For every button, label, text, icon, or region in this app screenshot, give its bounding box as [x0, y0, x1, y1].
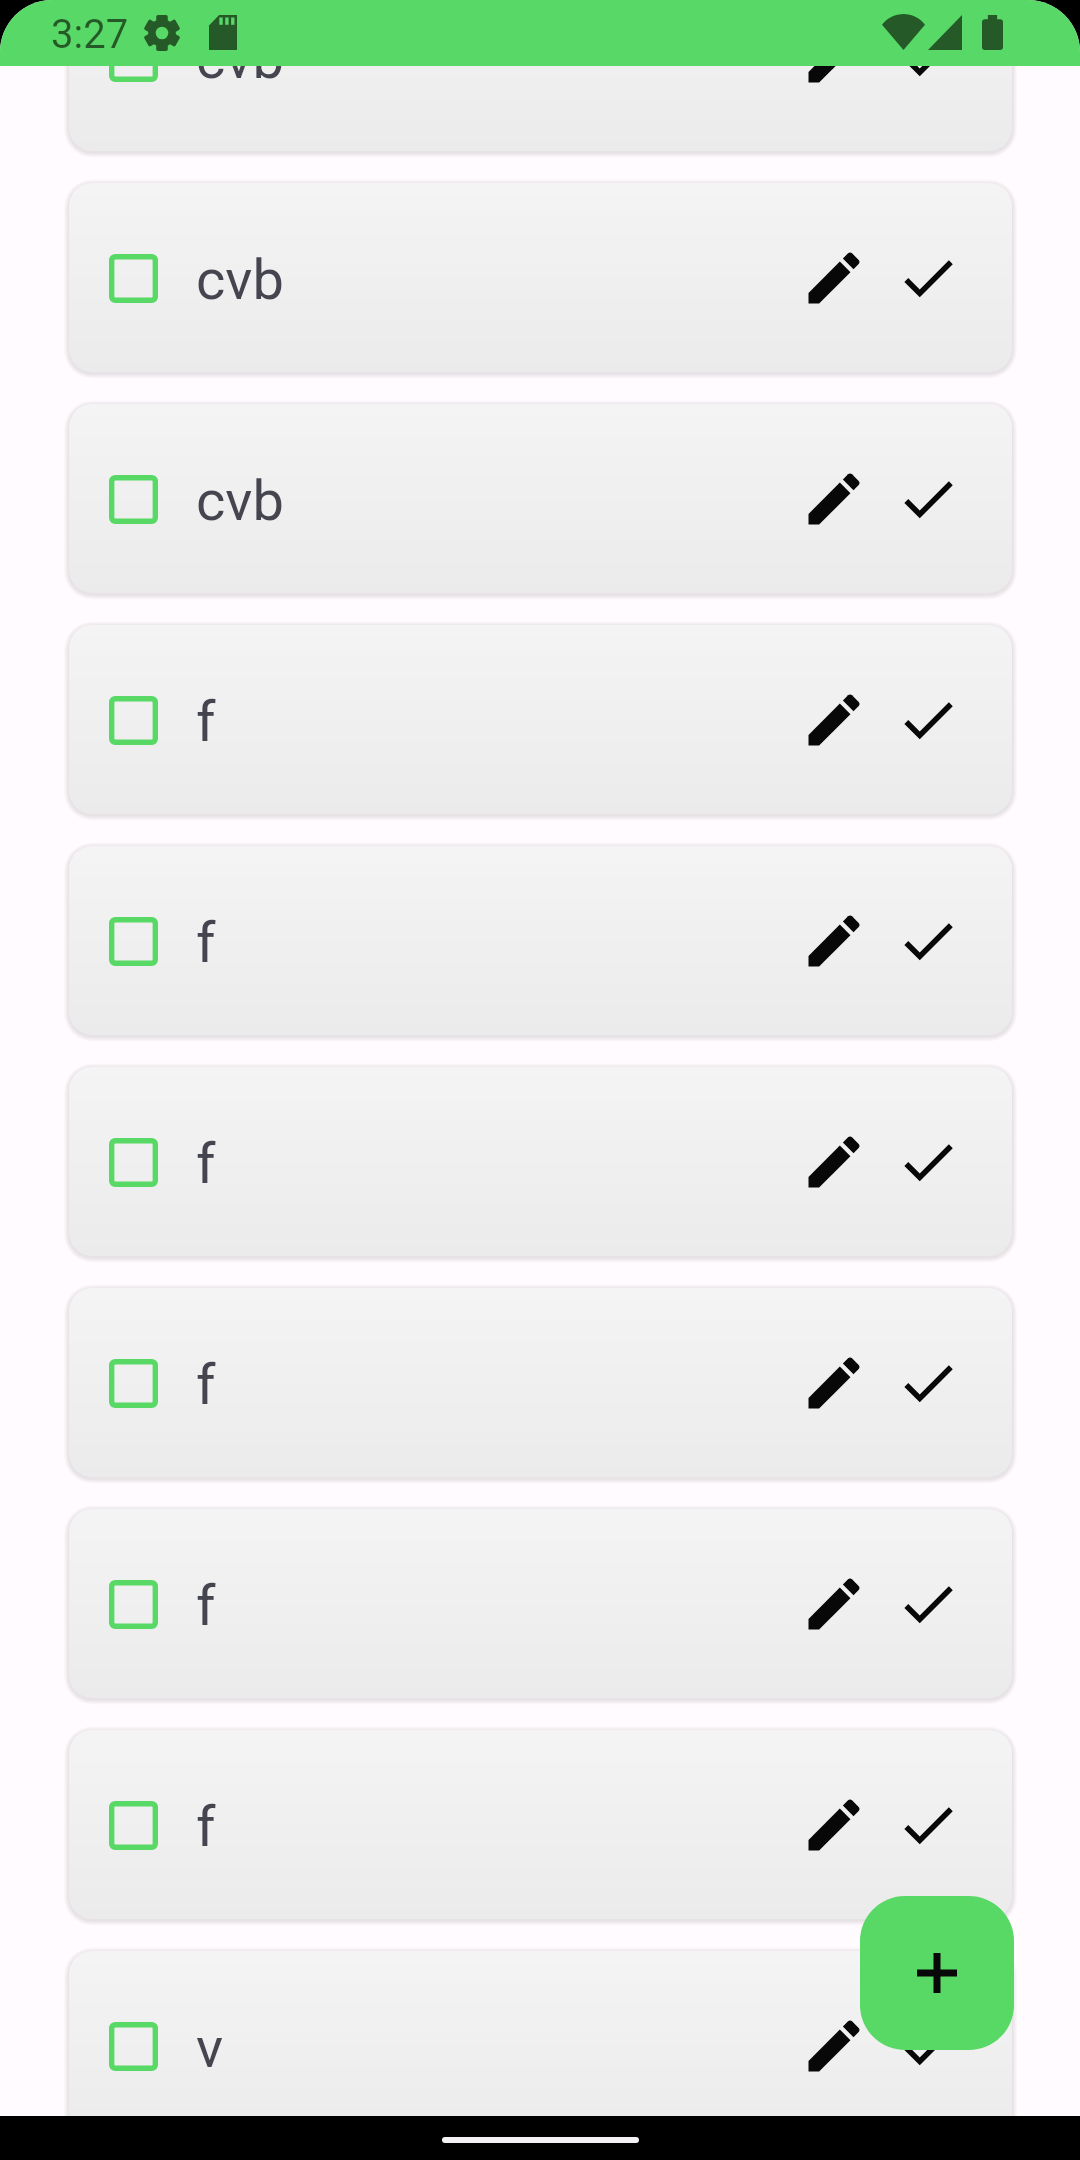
staticText: 3:27 [51, 11, 129, 58]
button[interactable]: Complete f [895, 1350, 961, 1416]
button[interactable]: Toggle f [103, 690, 163, 750]
staticText: f [196, 1573, 216, 1639]
button[interactable]: Toggle cvb [69, 0, 1012, 151]
button[interactable]: Edit cvb [800, 465, 868, 533]
button[interactable]: Complete cvb [895, 466, 961, 532]
button[interactable]: Toggle f [69, 1067, 1012, 1256]
button[interactable]: Toggle cvb [103, 27, 163, 87]
button[interactable]: Toggle f [103, 1574, 163, 1634]
staticText: cvb [196, 26, 284, 92]
button[interactable]: Edit f [800, 1570, 868, 1638]
button[interactable]: Edit f [800, 1791, 868, 1859]
button[interactable]: Toggle cvb [69, 183, 1012, 372]
button[interactable]: Toggle f [69, 846, 1012, 1035]
button[interactable]: Complete f [895, 687, 961, 753]
button[interactable]: Toggle f [69, 1509, 1012, 1698]
button[interactable]: Complete v [895, 2013, 961, 2079]
button[interactable]: Edit v [800, 2012, 868, 2080]
button[interactable]: Toggle f [69, 1288, 1012, 1477]
button[interactable]: Toggle f [103, 1353, 163, 1413]
staticText: cvb [196, 247, 284, 313]
button[interactable]: Edit cvb [800, 244, 868, 312]
button[interactable]: Toggle f [103, 1132, 163, 1192]
button[interactable]: Toggle v [69, 1951, 1012, 2140]
button[interactable]: Complete cvb [895, 245, 961, 311]
button[interactable]: Toggle v [103, 2016, 163, 2076]
button[interactable]: Edit f [800, 1349, 868, 1417]
button[interactable]: Edit f [800, 1128, 868, 1196]
staticText: v [196, 2015, 224, 2081]
button[interactable]: Edit cvb [800, 23, 868, 91]
button[interactable]: Toggle f [69, 1730, 1012, 1919]
staticText: cvb [196, 468, 284, 534]
staticText: f [196, 1352, 216, 1418]
button[interactable]: Complete f [895, 1571, 961, 1637]
button[interactable]: Toggle f [69, 625, 1012, 814]
button[interactable]: Add task [860, 1896, 1014, 2050]
button[interactable]: Edit f [800, 907, 868, 975]
staticText: f [196, 689, 216, 755]
button[interactable]: Complete f [895, 908, 961, 974]
button[interactable]: Toggle cvb [69, 404, 1012, 593]
button[interactable]: Edit f [800, 686, 868, 754]
button[interactable]: Complete cvb [895, 24, 961, 90]
button[interactable]: Complete f [895, 1129, 961, 1195]
button[interactable]: Complete f [895, 1792, 961, 1858]
staticText: f [196, 1131, 216, 1197]
button[interactable]: Toggle cvb [103, 469, 163, 529]
button[interactable]: Toggle cvb [103, 248, 163, 308]
staticText: f [196, 1794, 216, 1860]
button[interactable]: Toggle f [103, 1795, 163, 1855]
staticText: f [196, 910, 216, 976]
button[interactable]: Toggle f [103, 911, 163, 971]
